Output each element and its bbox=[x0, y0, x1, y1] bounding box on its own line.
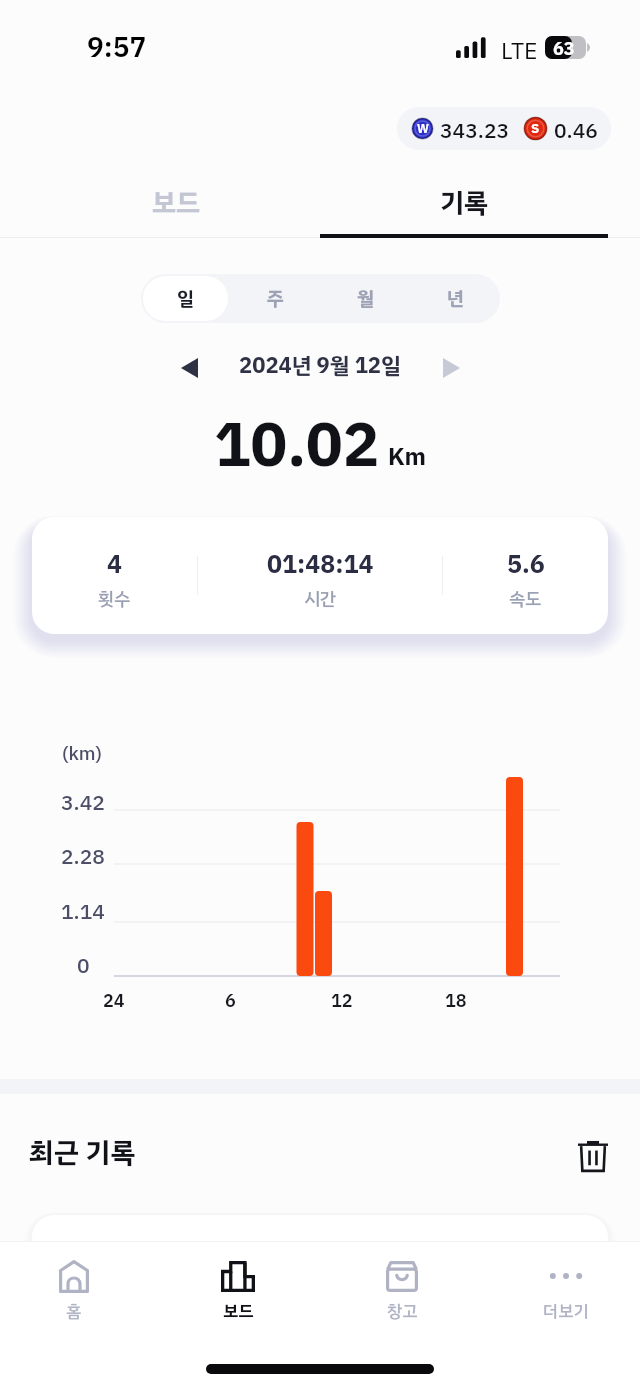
button[interactable]: 보드 bbox=[120, 172, 232, 234]
staticText: 4 bbox=[107, 546, 123, 584]
staticText: 01:48:14 bbox=[267, 546, 374, 584]
staticText: 기록 bbox=[440, 183, 489, 224]
staticText: 0.46 bbox=[554, 115, 598, 147]
button[interactable]: 홈 bbox=[16, 1243, 132, 1339]
staticText: 년 bbox=[447, 284, 464, 313]
staticText: W bbox=[417, 120, 429, 138]
staticText: 월 bbox=[357, 284, 374, 313]
button[interactable]: 보드 bbox=[180, 1243, 296, 1339]
button[interactable]: Previous day bbox=[164, 348, 214, 388]
staticText: 더보기 bbox=[543, 1299, 589, 1324]
staticText: 63 bbox=[553, 35, 575, 58]
button[interactable]: 창고 bbox=[344, 1243, 460, 1339]
staticText: (km) bbox=[62, 739, 102, 768]
button[interactable]: 년 bbox=[412, 276, 498, 321]
button[interactable]: W bbox=[397, 107, 611, 150]
staticText: 2.28 bbox=[61, 841, 105, 873]
staticText: 12 bbox=[331, 987, 353, 1011]
staticText: 18 bbox=[445, 987, 467, 1011]
staticText: 일 bbox=[177, 284, 194, 313]
staticText: 시간 bbox=[304, 585, 337, 612]
button[interactable]: 주 bbox=[232, 276, 318, 321]
staticText: S bbox=[531, 119, 540, 139]
staticText: LTE bbox=[501, 34, 538, 69]
button[interactable]: Delete records bbox=[564, 1127, 621, 1184]
staticText: 343.23 bbox=[440, 115, 510, 147]
staticText: 2024년 9월 12일 bbox=[239, 349, 401, 382]
button[interactable]: 더보기 bbox=[508, 1243, 624, 1339]
staticText: 주 bbox=[267, 284, 284, 313]
staticText: 최근 기록 bbox=[29, 1132, 136, 1174]
staticText: 1.14 bbox=[61, 896, 105, 928]
staticText: Km bbox=[388, 439, 426, 475]
staticText: 0 bbox=[77, 950, 90, 982]
button[interactable]: 기록 bbox=[408, 172, 520, 234]
staticText: 6 bbox=[225, 987, 236, 1011]
staticText: 횟수 bbox=[98, 585, 131, 612]
button[interactable]: 일 bbox=[143, 276, 228, 321]
staticText: 속도 bbox=[509, 585, 542, 612]
button[interactable]: 월 bbox=[322, 276, 408, 321]
staticText: 10.02 bbox=[214, 400, 380, 490]
button[interactable]: Next day bbox=[426, 348, 476, 388]
staticText: 보드 bbox=[152, 183, 201, 224]
staticText: 5.6 bbox=[507, 546, 545, 584]
staticText: 3.42 bbox=[61, 787, 105, 819]
staticText: 9:57 bbox=[87, 27, 147, 69]
staticText: 보드 bbox=[223, 1299, 254, 1324]
staticText: 홈 bbox=[66, 1299, 82, 1324]
staticText: 창고 bbox=[387, 1299, 418, 1324]
staticText: 24 bbox=[103, 987, 125, 1011]
